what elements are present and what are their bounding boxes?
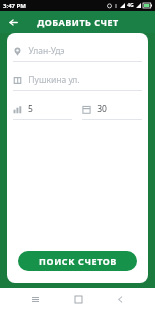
- staticText: Пушкина ул.: [28, 74, 80, 86]
- button[interactable]: ПОИСК СЧЕТОВ: [18, 251, 137, 271]
- staticText: Улан-Удэ: [28, 45, 65, 57]
- button[interactable]: Recent apps: [27, 291, 43, 307]
- staticText: 30: [97, 103, 107, 115]
- button[interactable]: 5: [13, 101, 72, 120]
- button[interactable]: Back: [6, 15, 20, 29]
- button[interactable]: Back: [112, 291, 128, 307]
- button[interactable]: Home: [70, 291, 86, 307]
- button[interactable]: Улан-Удэ: [13, 43, 142, 62]
- button[interactable]: Пушкина ул.: [13, 72, 142, 91]
- staticText: ДОБАВИТЬ СЧЕТ: [37, 16, 119, 28]
- button[interactable]: 30: [82, 101, 142, 120]
- staticText: 5: [28, 103, 33, 115]
- staticText: 3:47 PM: [3, 2, 26, 10]
- staticText: ПОИСК СЧЕТОВ: [39, 255, 117, 267]
- staticText: 4G: [127, 2, 134, 9]
